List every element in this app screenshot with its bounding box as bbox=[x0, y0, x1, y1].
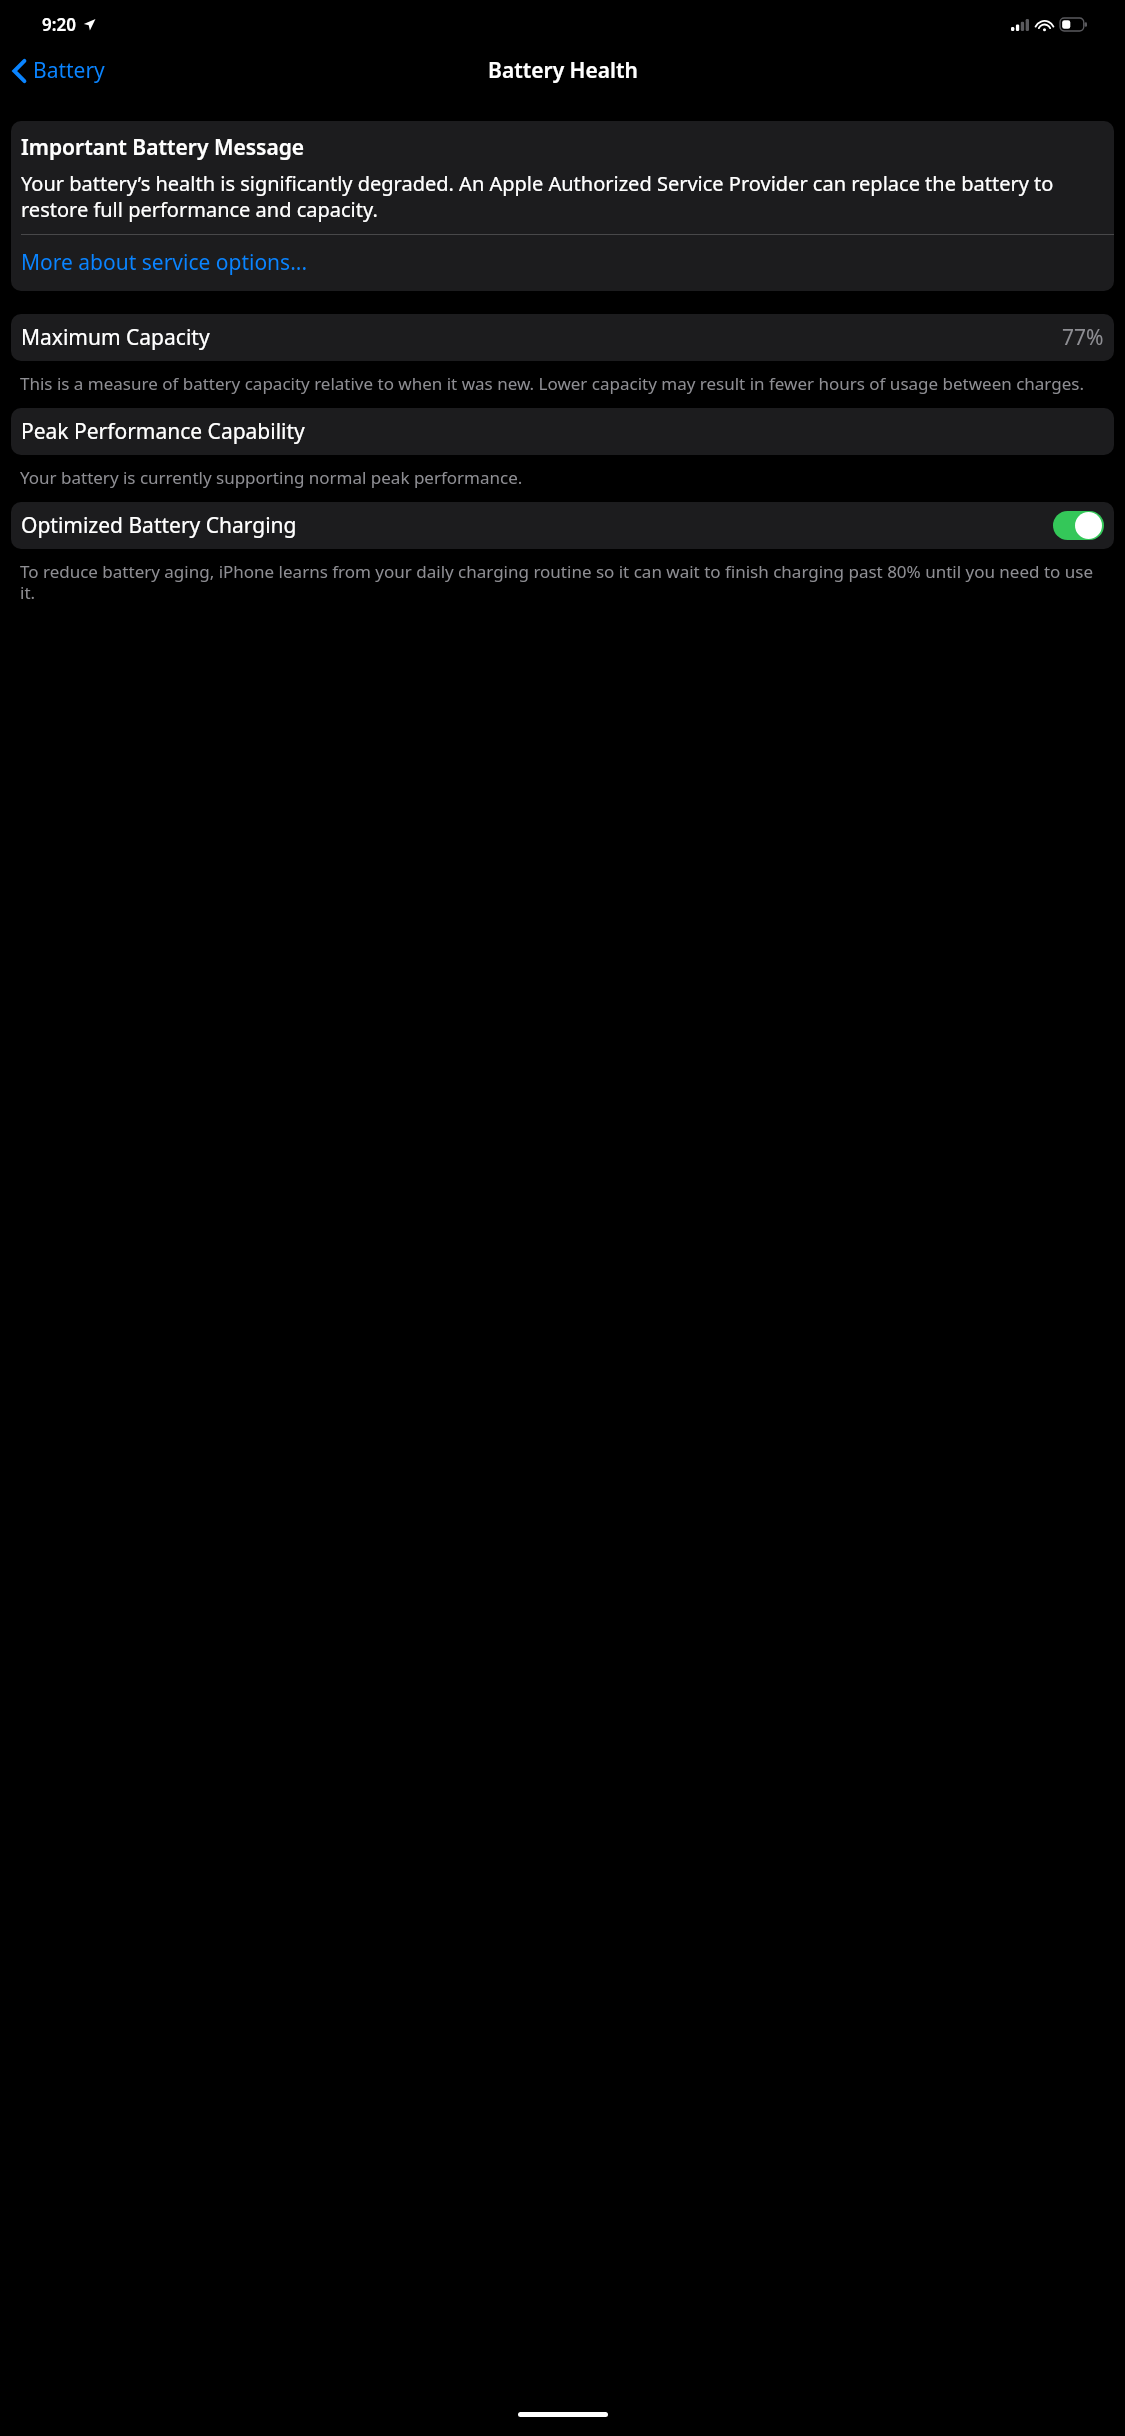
button[interactable]: Optimized Battery Charging bbox=[11, 511, 1114, 540]
other: Cellular signal bbox=[1011, 19, 1029, 31]
other: Wi-Fi bbox=[1036, 19, 1053, 31]
button[interactable]: Peak Performance Capability bbox=[11, 417, 1114, 446]
staticText: Battery bbox=[33, 56, 105, 85]
staticText: 77% bbox=[1062, 323, 1104, 352]
staticText: Your battery is currently supporting nor… bbox=[20, 466, 1107, 489]
staticText: 9:20 bbox=[42, 13, 76, 36]
other: Battery bbox=[1060, 18, 1087, 31]
button[interactable]: Battery bbox=[0, 50, 115, 91]
button[interactable]: Optimized Battery Charging toggle bbox=[1053, 511, 1104, 540]
button[interactable]: More about service options... bbox=[11, 235, 1114, 291]
staticText: This is a measure of battery capacity re… bbox=[20, 372, 1107, 395]
button[interactable]: Maximum Capacity bbox=[11, 323, 1114, 352]
staticText: Battery Health bbox=[488, 56, 638, 85]
staticText: Optimized Battery Charging bbox=[21, 511, 297, 540]
staticText: Peak Performance Capability bbox=[21, 417, 305, 446]
staticText: Maximum Capacity bbox=[21, 323, 210, 352]
staticText: Your battery’s health is significantly d… bbox=[21, 170, 1104, 222]
staticText: Important Battery Message bbox=[21, 133, 305, 162]
staticText: More about service options... bbox=[21, 248, 308, 277]
staticText: To reduce battery aging, iPhone learns f… bbox=[20, 560, 1107, 604]
